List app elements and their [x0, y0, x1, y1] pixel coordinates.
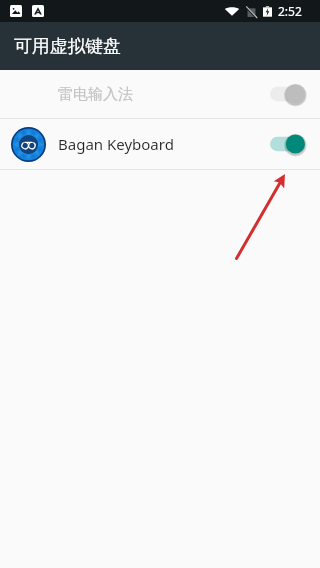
button[interactable]: Disable Bagan Keyboard [270, 132, 306, 156]
button[interactable]: 雷电输入法 [0, 70, 320, 118]
staticText: 2:52 [278, 3, 302, 19]
staticText: Bagan Keyboard [58, 134, 174, 154]
other: Bagan Keyboard icon [11, 127, 46, 162]
staticText: 雷电输入法 [58, 85, 133, 104]
button[interactable]: Bagan Keyboard icon [0, 119, 320, 169]
staticText: 可用虚拟键盘 [14, 35, 121, 57]
button[interactable]: Enable 雷电输入法 [270, 82, 306, 106]
